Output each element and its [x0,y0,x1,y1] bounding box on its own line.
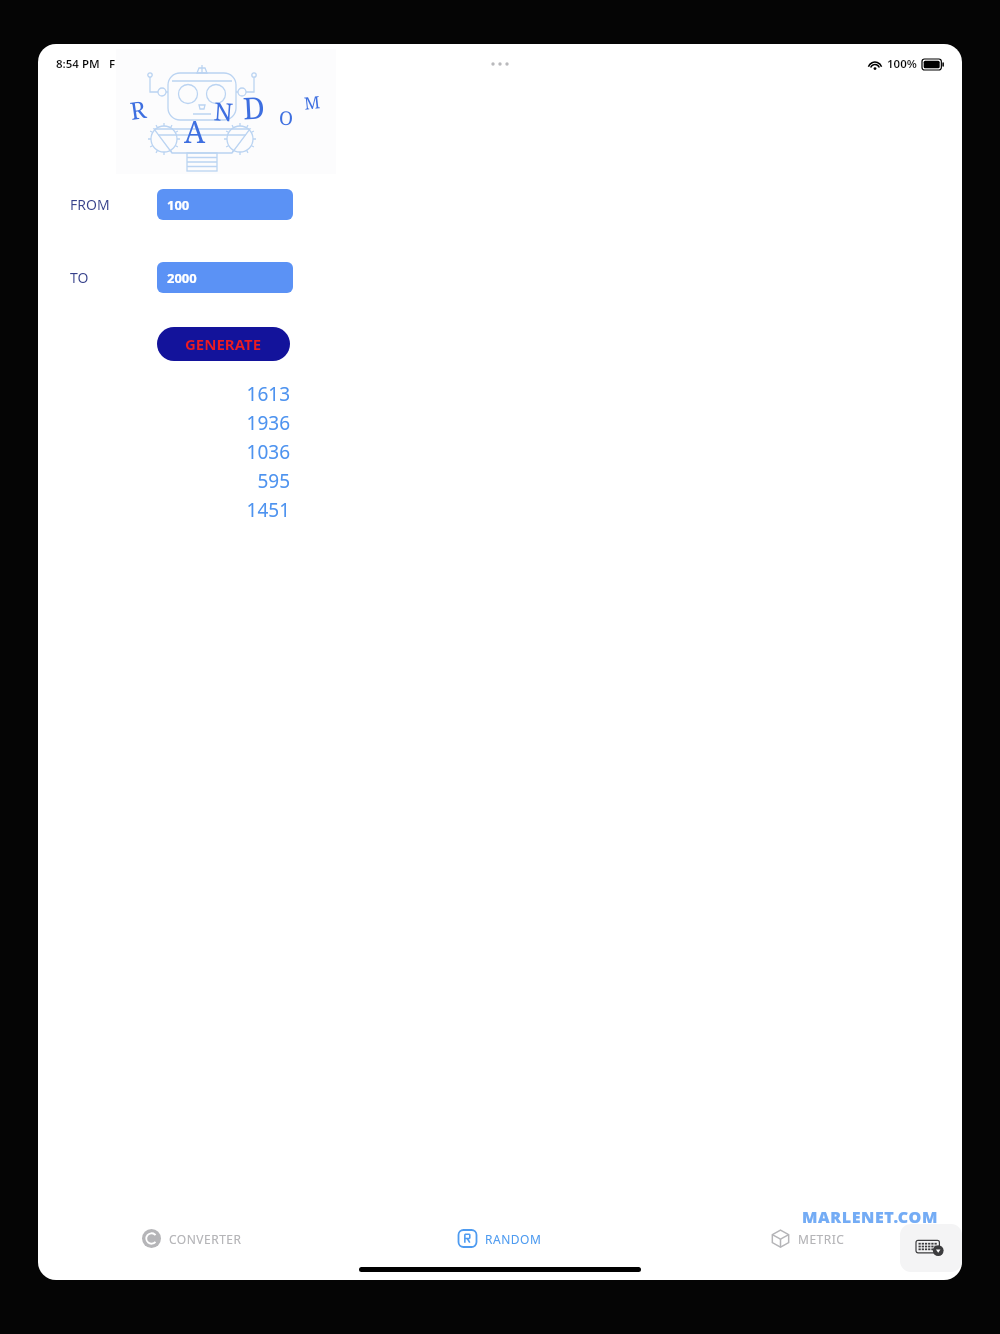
other: RANDOM [458,1229,477,1248]
staticText: 100% [887,56,917,72]
staticText: GENERATE [185,334,262,354]
staticText: N [213,93,235,129]
staticText: O [279,105,294,131]
staticText: 595 [178,468,290,494]
staticText: 100 [167,196,190,214]
staticText: TO [70,268,89,287]
staticText: METRIC [798,1231,845,1247]
other: CONVERTER [142,1229,161,1248]
staticText: R [128,92,148,127]
staticText: D [242,86,266,129]
staticText: 1936 [178,410,290,436]
button[interactable]: 100 [157,189,293,220]
other: METRIC [771,1229,790,1248]
staticText: Fri Feb 24 [109,56,163,72]
button[interactable]: CONVERTER [38,1214,346,1262]
staticText: RANDOM [485,1231,542,1247]
button[interactable]: 2000 [157,262,293,293]
button[interactable]: RANDOM [346,1214,654,1262]
staticText: 2000 [167,269,197,287]
staticText: 1036 [178,439,290,465]
staticText: A [184,111,206,152]
staticText: CONVERTER [169,1231,242,1247]
staticText: MARLENET.COM [802,1206,938,1228]
button[interactable]: Hide keyboard [900,1224,962,1272]
staticText: M [303,90,321,115]
button[interactable]: METRIC [654,1214,962,1262]
staticText: 1451 [178,497,290,523]
button[interactable]: GENERATE [157,327,290,361]
staticText: 8:54 PM [56,56,100,72]
staticText: FROM [70,195,110,214]
staticText: 1613 [178,381,290,407]
